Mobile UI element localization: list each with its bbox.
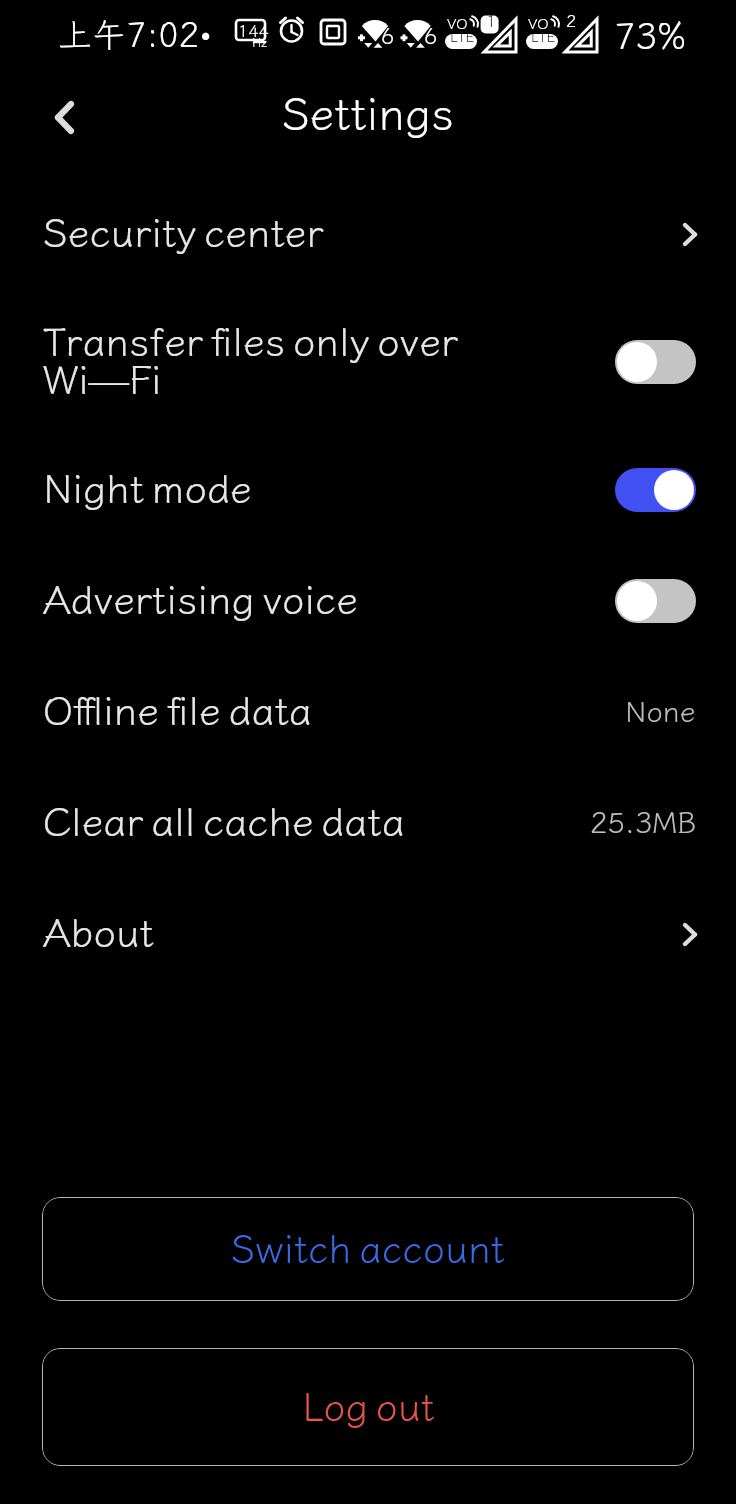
staticText: Night mode: [43, 457, 599, 515]
staticText: VO: [528, 12, 549, 34]
button[interactable]: Switch off: [615, 340, 696, 384]
button[interactable]: Clear all cache data: [0, 763, 736, 874]
staticText: Transfer files only over Wi—Fi: [43, 310, 599, 406]
staticText: 144: [238, 17, 269, 42]
button[interactable]: Open: [668, 912, 712, 956]
button[interactable]: Offline file data: [0, 652, 736, 763]
staticText: Security center: [43, 201, 636, 259]
staticText: Offline file data: [43, 679, 609, 737]
staticText: 6: [381, 18, 395, 50]
button[interactable]: Open: [668, 212, 712, 256]
button[interactable]: Switch off: [615, 579, 696, 623]
staticText: Switch account: [231, 1218, 505, 1274]
staticText: 25.3MB: [590, 799, 696, 841]
button[interactable]: Switch on: [615, 468, 696, 512]
button[interactable]: Security center: [0, 174, 736, 285]
staticText: 73%: [614, 7, 687, 59]
button[interactable]: Log out: [42, 1348, 694, 1466]
staticText: VO: [447, 12, 468, 34]
staticText: 上午7:02•: [58, 8, 213, 57]
staticText: None: [625, 688, 696, 730]
staticText: Hz: [252, 32, 268, 51]
staticText: Log out: [302, 1376, 435, 1432]
staticText: Advertising voice: [43, 568, 599, 626]
staticText: LTE: [450, 26, 475, 46]
button[interactable]: Back: [32, 85, 97, 150]
staticText: 2: [566, 7, 577, 32]
staticText: About: [43, 901, 636, 959]
button[interactable]: Switch account: [42, 1197, 694, 1301]
button[interactable]: About: [0, 874, 736, 985]
staticText: Clear all cache data: [43, 790, 574, 848]
button[interactable]: Transfer files only over Wi—Fi: [0, 285, 736, 430]
staticText: LTE: [531, 26, 556, 46]
button[interactable]: Advertising voice: [0, 541, 736, 652]
staticText: 1: [486, 7, 497, 32]
button[interactable]: Night mode: [0, 430, 736, 541]
staticText: Settings: [282, 78, 454, 143]
staticText: 6: [424, 18, 438, 50]
